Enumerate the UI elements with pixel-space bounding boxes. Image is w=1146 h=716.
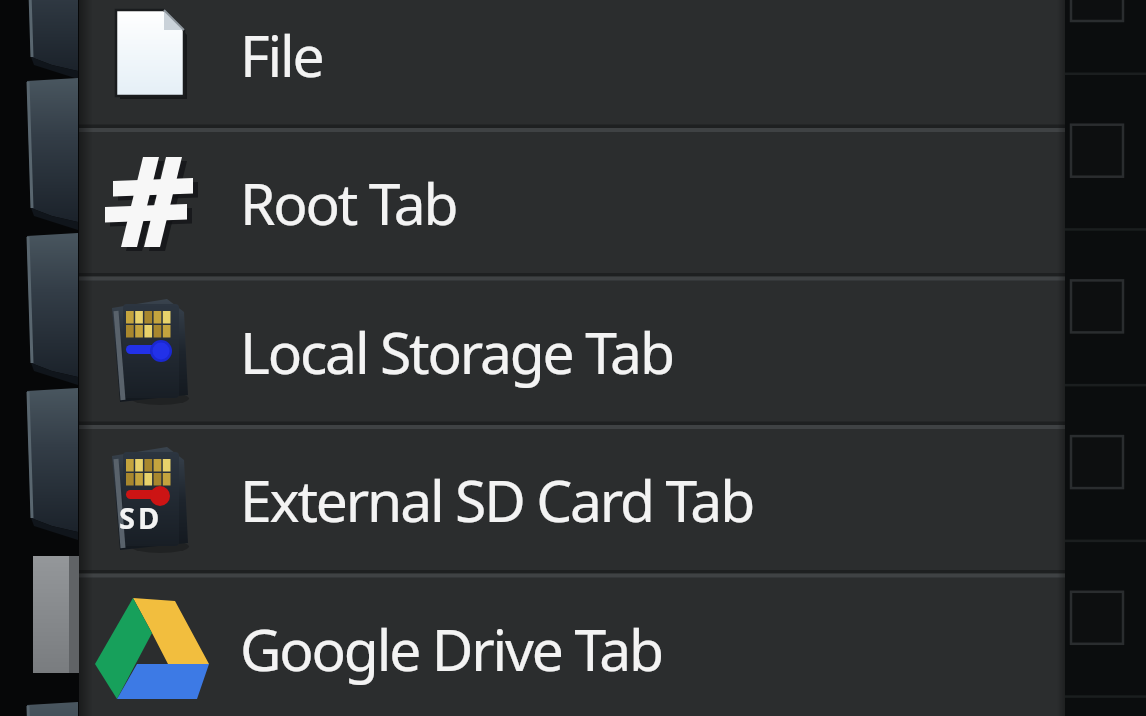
staticText: SD: [119, 498, 163, 537]
staticText: Root Tab: [240, 164, 457, 242]
button[interactable]: File: [79, 0, 1065, 129]
staticText: External SD Card Tab: [240, 461, 754, 539]
staticText: Local Storage Tab: [240, 313, 673, 391]
button[interactable]: Google Drive Tab: [79, 574, 1065, 716]
button[interactable]: Root Tab: [79, 128, 1065, 277]
button[interactable]: SD: [79, 425, 1065, 574]
staticText: Google Drive Tab: [240, 610, 662, 688]
button[interactable]: Local Storage Tab: [79, 277, 1065, 426]
staticText: File: [240, 16, 323, 94]
